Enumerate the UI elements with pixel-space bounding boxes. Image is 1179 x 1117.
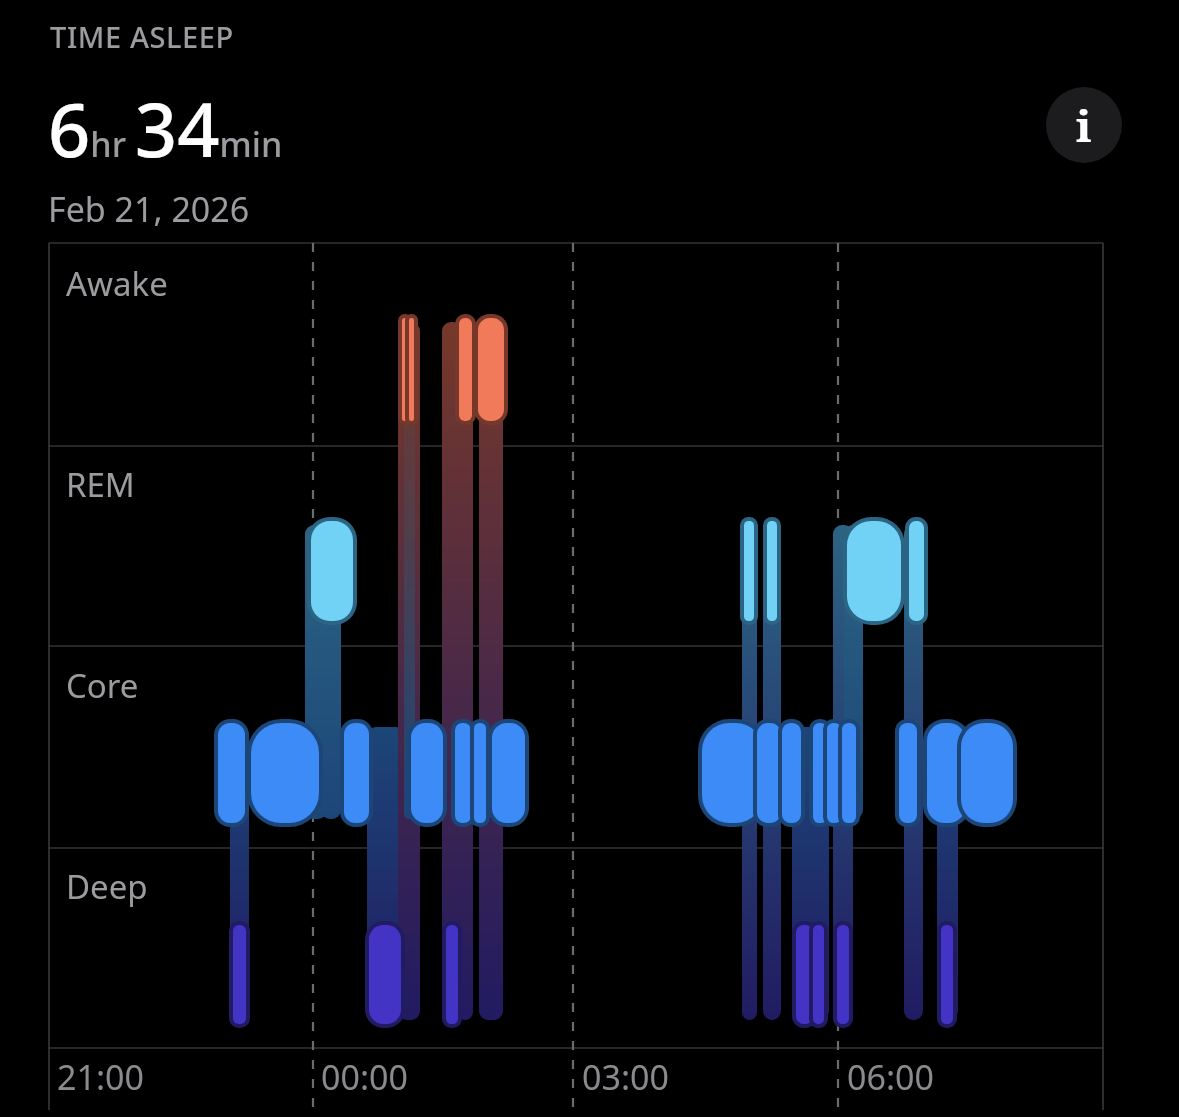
staticText: Deep <box>66 864 148 909</box>
staticText: i <box>1076 95 1092 155</box>
staticText: TIME ASLEEP <box>50 17 234 56</box>
staticText: 00:00 <box>321 1054 408 1100</box>
staticText: 03:00 <box>582 1054 669 1100</box>
staticText: 21:00 <box>57 1054 144 1100</box>
staticText: 6hr 34min <box>48 78 283 179</box>
button[interactable]: About sleep stages <box>1046 87 1122 163</box>
staticText: REM <box>66 462 135 507</box>
staticText: 06:00 <box>847 1054 934 1100</box>
staticText: Feb 21, 2026 <box>48 186 250 232</box>
staticText: Core <box>66 663 139 708</box>
staticText: Awake <box>66 261 168 306</box>
